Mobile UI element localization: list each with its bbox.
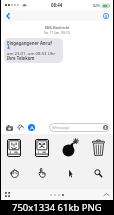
button[interactable]: App Store [26,122,37,133]
button[interactable]: Photos [15,122,26,133]
button[interactable]: Sticker 3 [60,138,80,158]
button[interactable]: Expand [102,190,111,199]
button[interactable]: App grid [3,190,12,199]
button[interactable]: Cursor 1 [4,163,24,183]
button[interactable]: Sticker 4 [88,138,108,158]
staticText: 750x1334 61kb PNG [12,201,102,214]
staticText: Eingegangener Anruf [7,40,52,46]
staticText: 08:44 [51,2,63,8]
staticText: So, 11 Jan, 06:13 [1,30,113,35]
button[interactable]: Back [1,10,15,21]
button[interactable]: Camera [4,122,15,133]
staticText: 82% [93,3,101,8]
staticText: Ihre Telekom [7,55,35,61]
staticText: iMessage [52,125,103,130]
button[interactable]: iMessage [49,123,110,132]
button[interactable]: Sticker 1 [4,138,24,158]
staticText: SMS-Nachricht [1,25,113,30]
button[interactable]: Cursor 4 [88,163,108,183]
staticText: am 23.01. um 08:53 Uhr [7,50,56,56]
button[interactable]: Info [99,10,113,21]
button[interactable]: Sticker 2 [32,138,52,158]
button[interactable]: Cursor 2 [32,163,52,183]
button[interactable]: Eingegangener Anruf [4,38,63,63]
button[interactable]: Cursor 3 [60,163,80,183]
